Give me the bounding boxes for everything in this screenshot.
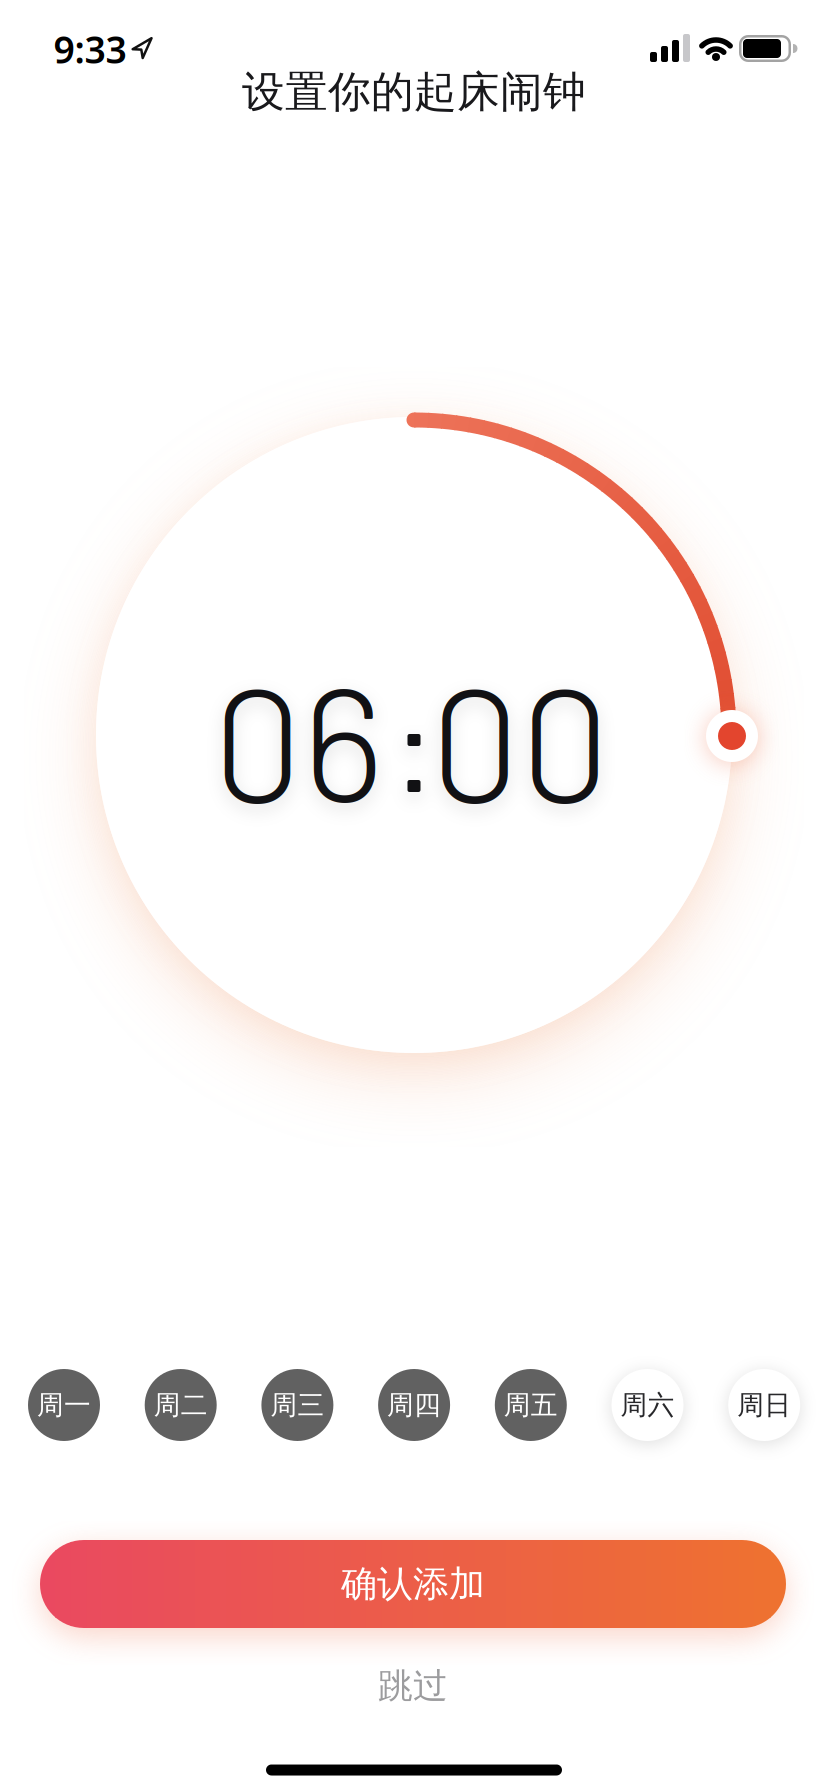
button[interactable]: 确认添加: [40, 1540, 786, 1628]
staticText: 06: [212, 642, 383, 834]
staticText: 周三: [270, 1389, 324, 1421]
staticText: 确认添加: [341, 1562, 485, 1606]
button[interactable]: 跳过: [348, 1655, 478, 1717]
staticText: 周日: [737, 1389, 791, 1421]
button[interactable]: 周四: [378, 1369, 450, 1441]
button[interactable]: 周三: [261, 1369, 333, 1441]
button[interactable]: 周二: [145, 1369, 217, 1441]
staticText: 跳过: [378, 1665, 448, 1707]
staticText: 周六: [620, 1389, 674, 1421]
staticText: 设置你的起床闹钟: [242, 66, 586, 118]
staticText: 周五: [504, 1389, 558, 1421]
staticText: 周一: [37, 1389, 91, 1421]
staticText: 9:33: [53, 24, 126, 74]
staticText: 周二: [154, 1389, 208, 1421]
button[interactable]: 周五: [495, 1369, 567, 1441]
button[interactable]: 周一: [28, 1369, 100, 1441]
button[interactable]: 周日: [728, 1369, 800, 1441]
staticText: 00: [430, 642, 610, 834]
button[interactable]: 周六: [611, 1369, 683, 1441]
staticText: 周四: [387, 1389, 441, 1421]
